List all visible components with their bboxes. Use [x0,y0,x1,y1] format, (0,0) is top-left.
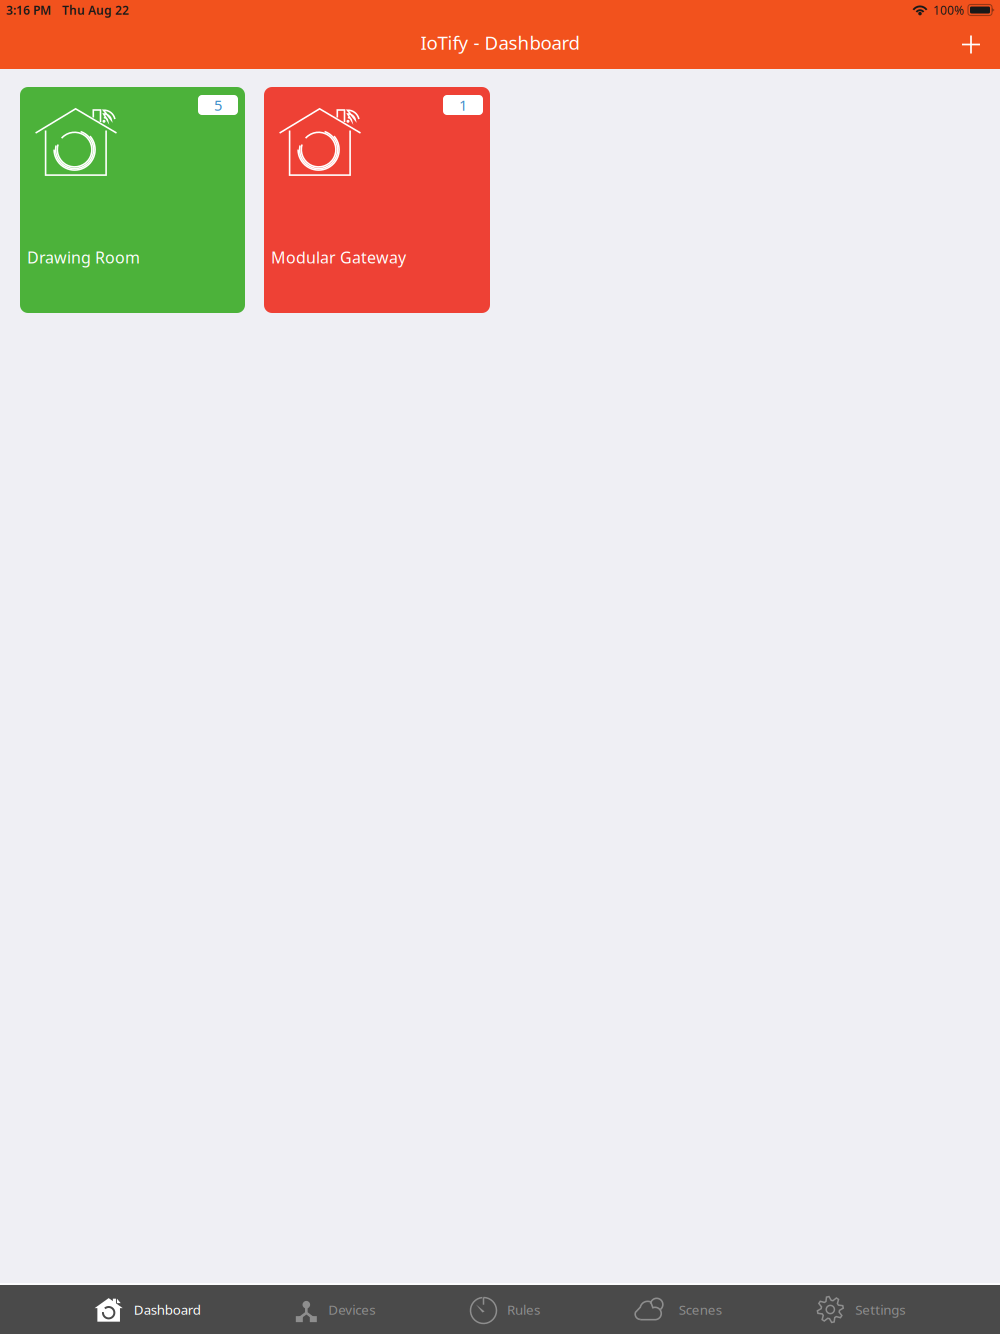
staticText: 5 [214,95,222,115]
staticText: Drawing Room [27,247,140,268]
staticText: Dashboard [134,1301,201,1318]
button[interactable]: Rules [470,1285,540,1334]
button[interactable]: Add [949,22,993,66]
staticText: 3:16 PM [6,2,51,18]
staticText: Thu Aug 22 [62,2,129,18]
button[interactable]: Devices [295,1285,375,1334]
staticText: Devices [328,1301,375,1318]
staticText: Modular Gateway [271,247,406,268]
staticText: Scenes [679,1301,722,1318]
button[interactable]: 5 [20,87,245,313]
staticText: IoTify - Dashboard [420,30,579,55]
button[interactable]: Dashboard [95,1285,201,1334]
staticText: Settings [855,1301,905,1318]
button[interactable]: Settings [816,1285,905,1334]
button[interactable]: 1 [264,87,490,313]
staticText: Rules [507,1301,540,1318]
staticText: 100% [933,2,964,18]
staticText: 1 [459,95,467,115]
button[interactable]: Scenes [635,1285,722,1334]
